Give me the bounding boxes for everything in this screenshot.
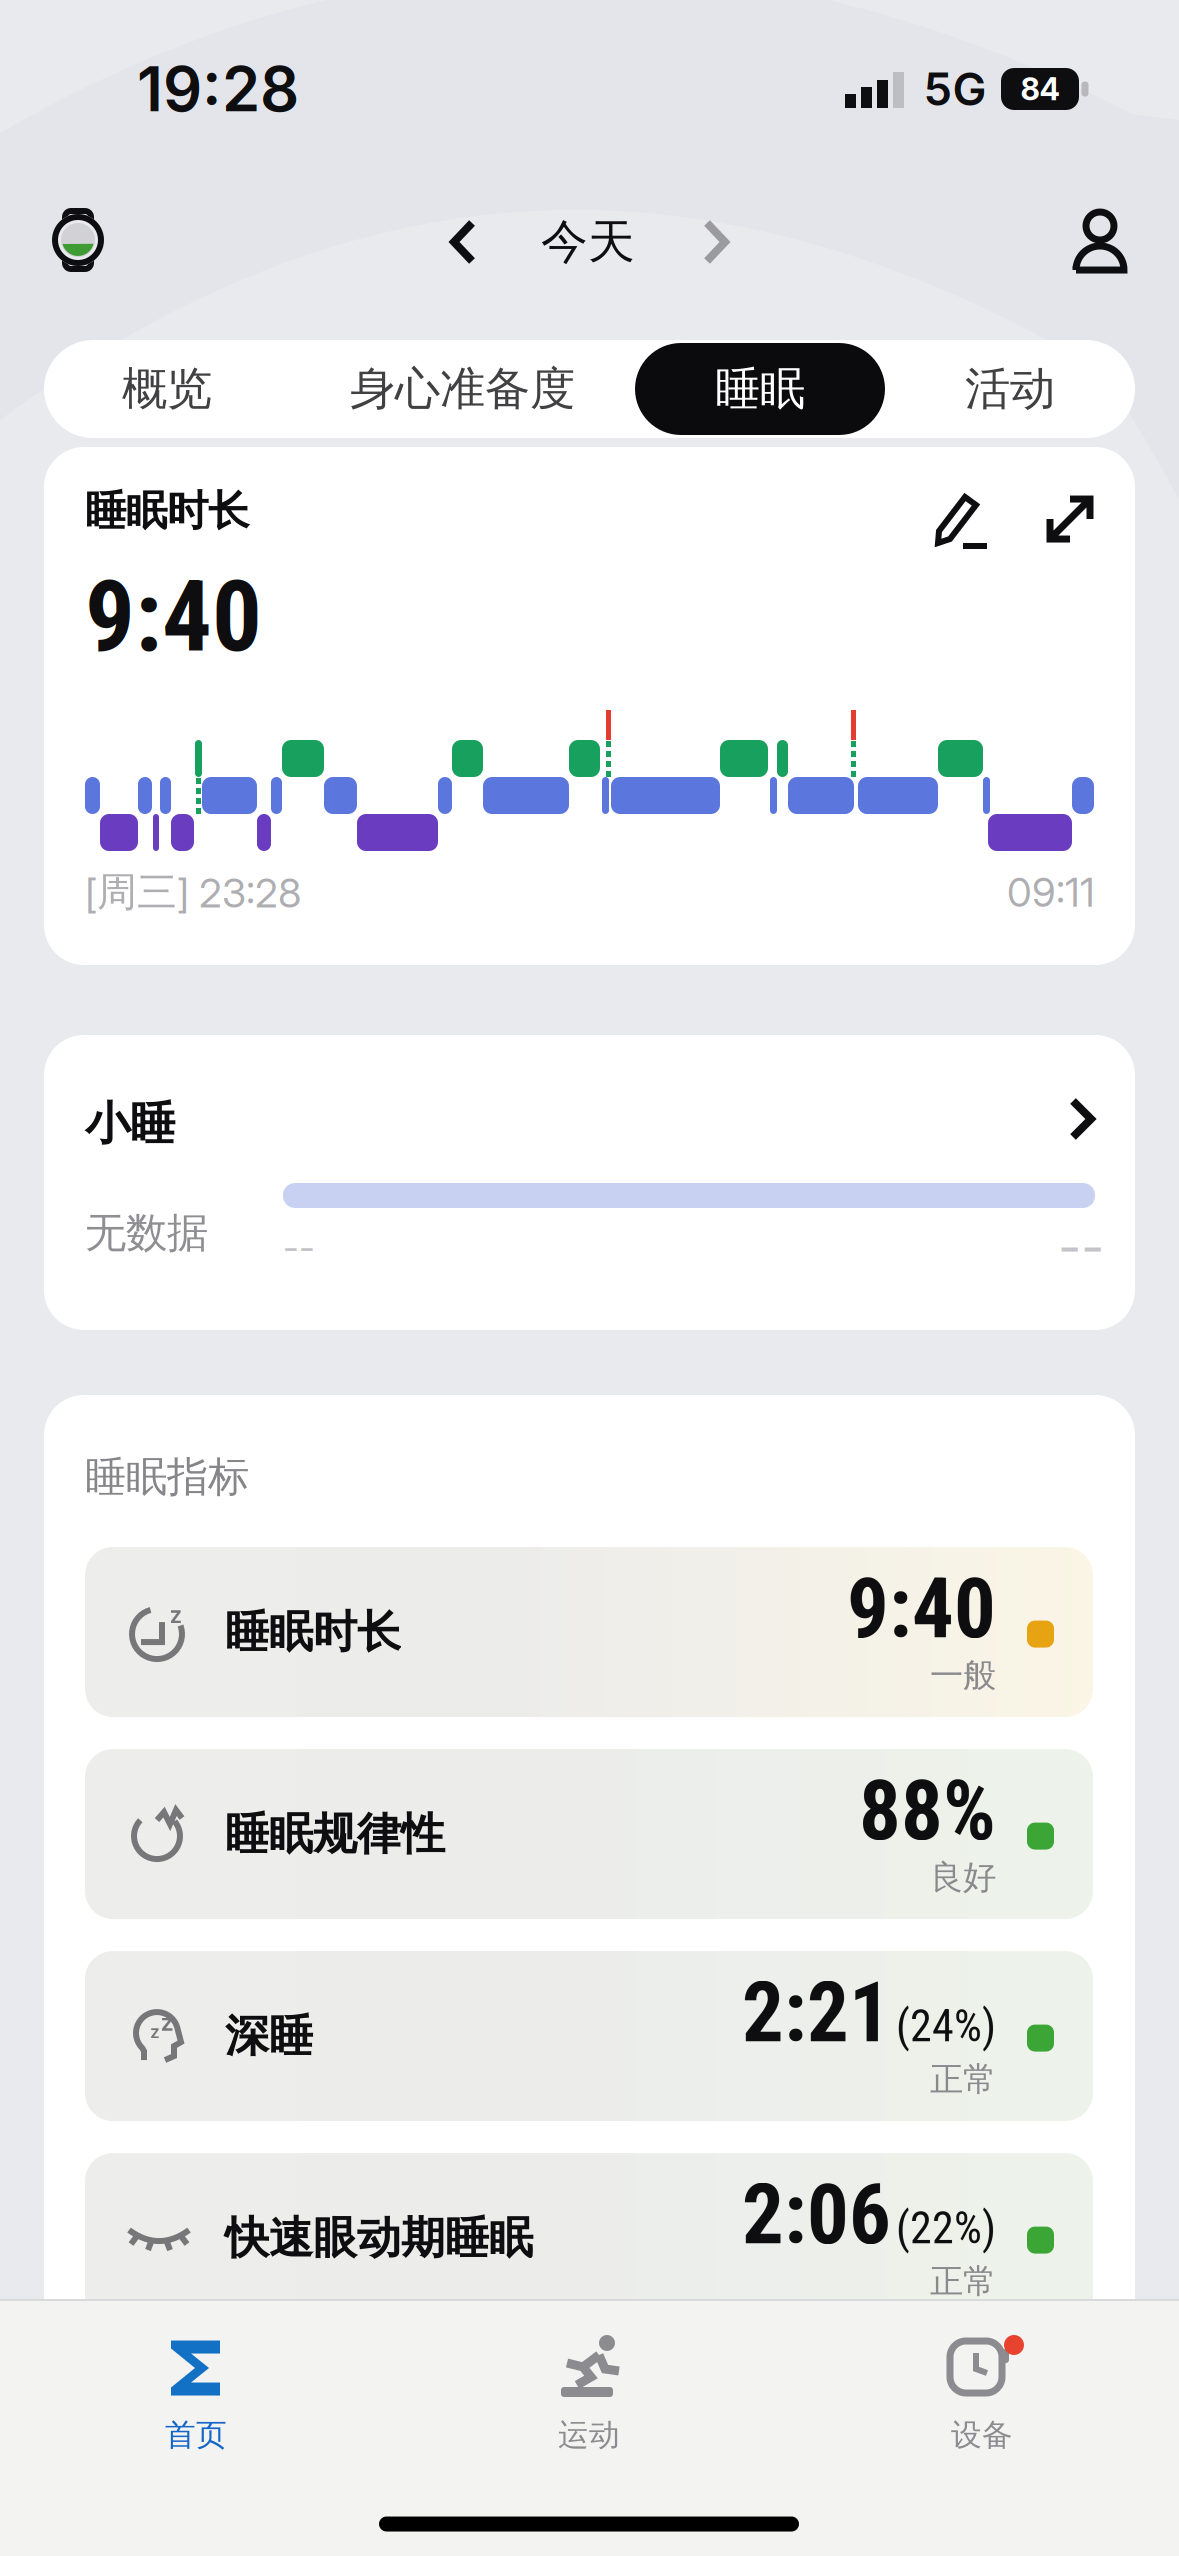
button[interactable]: 运动 (459, 2304, 719, 2484)
staticText: 良好 (930, 1856, 996, 1898)
staticText: 正常 (930, 2058, 996, 2100)
staticText: 设备 (951, 2416, 1013, 2454)
button[interactable]: Edit sleep (935, 491, 991, 547)
button[interactable]: 首页 (66, 2304, 326, 2484)
button[interactable]: 活动 (885, 340, 1135, 438)
button[interactable]: 睡眠 (635, 340, 885, 438)
staticText: 09:11 (1007, 868, 1095, 916)
staticText: 84 (1020, 70, 1059, 107)
staticText: 5G (923, 62, 986, 116)
button[interactable]: 睡眠规律性 (85, 1749, 1093, 1919)
staticText: -- (283, 1225, 315, 1269)
button[interactable]: 快速眼动期睡眠 (85, 2153, 1093, 2323)
staticText: z (160, 2007, 173, 2036)
staticText: 无数据 (85, 1207, 208, 1259)
button[interactable]: 设备 (852, 2304, 1112, 2484)
button[interactable]: z (85, 1547, 1093, 1717)
button[interactable]: Next day (703, 219, 729, 265)
staticText: 睡眠时长 (225, 1604, 401, 1660)
button[interactable]: 身心准备度 (290, 340, 635, 438)
staticText: 睡眠时长 (85, 485, 249, 537)
staticText: 身心准备度 (350, 360, 575, 417)
staticText: (24%) (896, 2000, 996, 2052)
staticText: 睡眠指标 (85, 1451, 249, 1503)
staticText: 19:28 (137, 52, 299, 126)
staticText: 活动 (965, 360, 1055, 417)
staticText: 睡眠 (715, 360, 805, 417)
staticText: z (169, 1601, 182, 1629)
button[interactable]: Profile (1074, 212, 1126, 272)
staticText: 88% (859, 1763, 996, 1859)
staticText: [周三] 23:28 (85, 867, 301, 917)
button[interactable]: 概览 (44, 340, 290, 438)
button[interactable]: Previous day (450, 219, 476, 265)
staticText: (22%) (896, 2202, 996, 2254)
button[interactable]: Expand (1044, 493, 1096, 545)
staticText: 首页 (165, 2416, 227, 2454)
staticText: 概览 (122, 360, 212, 417)
staticText: 运动 (558, 2416, 620, 2454)
staticText: 今天 (541, 213, 635, 271)
staticText: 2:21 (742, 1965, 891, 2061)
staticText: 正常 (930, 2260, 996, 2302)
staticText: 睡眠规律性 (225, 1806, 445, 1862)
staticText: 小睡 (85, 1095, 175, 1152)
staticText: 9:40 (85, 559, 262, 675)
button[interactable]: z (85, 1951, 1093, 2121)
staticText: 快速眼动期睡眠 (225, 2210, 533, 2266)
button[interactable]: Watch status (49, 208, 107, 272)
button[interactable]: 小睡 (44, 1035, 1135, 1330)
staticText: 2:06 (742, 2167, 891, 2263)
staticText: z (150, 2022, 160, 2043)
staticText: 9:40 (847, 1561, 996, 1657)
staticText: 一般 (930, 1654, 996, 1696)
staticText: 深睡 (225, 2008, 313, 2064)
staticText: -- (1058, 1216, 1104, 1278)
